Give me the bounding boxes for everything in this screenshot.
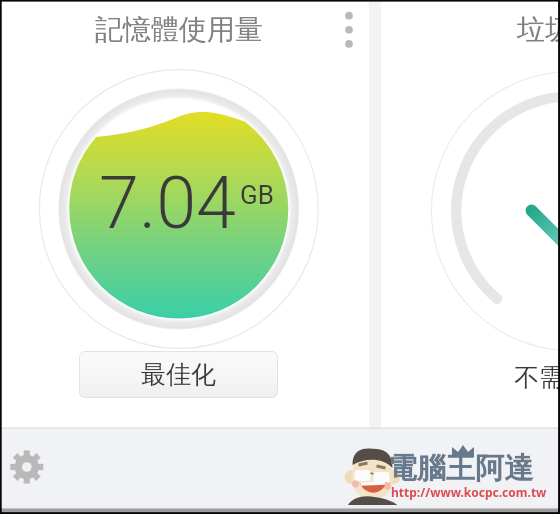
staticText: 不需清理	[514, 362, 560, 393]
staticText: GB	[240, 180, 274, 210]
staticText: 記憶體使用量	[95, 12, 263, 47]
staticText: 電腦王阿達	[388, 450, 533, 487]
button[interactable]: Settings	[0, 440, 54, 494]
staticText: 7.04	[99, 161, 237, 245]
staticText: 最佳化	[141, 359, 216, 390]
button[interactable]: More options	[333, 5, 367, 55]
button[interactable]: 最佳化	[79, 351, 278, 398]
staticText: 垃圾清理	[517, 12, 560, 47]
staticText: http://www.kocpc.com.tw	[391, 484, 547, 500]
